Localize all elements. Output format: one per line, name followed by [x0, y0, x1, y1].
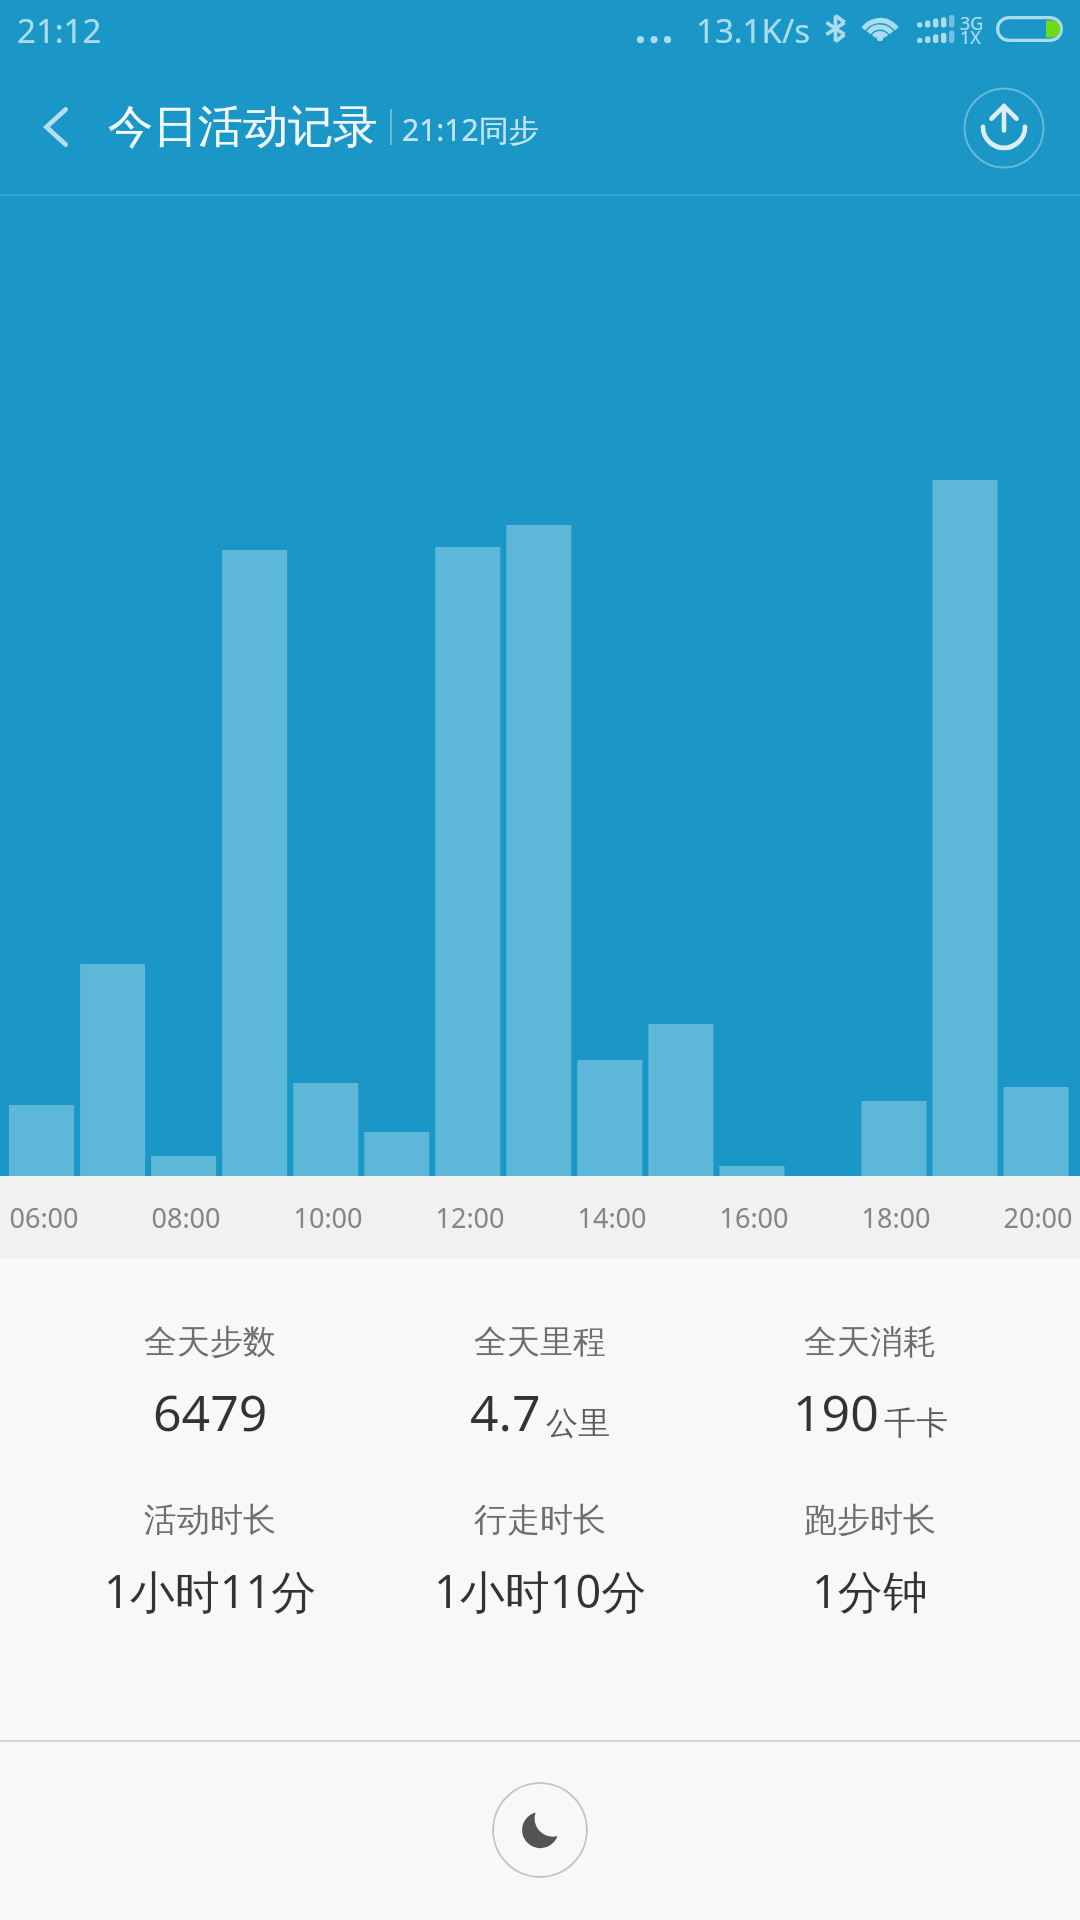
staticText: 公里 [546, 1403, 610, 1443]
staticText: 21:12同步 [402, 109, 539, 150]
staticText: 今日活动记录 [108, 99, 378, 156]
staticText: 全天步数 [144, 1321, 276, 1363]
staticText: 全天里程 [474, 1321, 606, 1363]
staticText: 1小时10分 [434, 1560, 647, 1621]
staticText: 20:00 [1003, 1199, 1073, 1236]
button[interactable]: Share [958, 82, 1050, 174]
staticText: 12:00 [435, 1199, 505, 1236]
staticText: 14:00 [577, 1199, 647, 1236]
staticText: 21:12 [17, 8, 102, 53]
staticText: 千卡 [884, 1403, 948, 1443]
button[interactable]: Back [6, 61, 106, 193]
staticText: 08:00 [151, 1199, 221, 1236]
staticText: 06:00 [9, 1199, 79, 1236]
staticText: 4.7 [470, 1378, 541, 1446]
staticText: 全天消耗 [804, 1321, 936, 1363]
staticText: 13.1K/s [696, 8, 810, 53]
staticText: 18:00 [861, 1199, 931, 1236]
staticText: 活动时长 [144, 1499, 276, 1541]
staticText: 1小时11分 [104, 1560, 317, 1621]
staticText: 3G 1X [960, 11, 984, 49]
staticText: 10:00 [293, 1199, 363, 1236]
button[interactable]: Sleep mode [492, 1782, 588, 1878]
staticText: 行走时长 [474, 1499, 606, 1541]
staticText: 190 [793, 1378, 879, 1446]
staticText: 16:00 [719, 1199, 789, 1236]
staticText: 1分钟 [812, 1560, 928, 1621]
staticText: 跑步时长 [804, 1499, 936, 1541]
staticText: 6479 [153, 1378, 268, 1446]
